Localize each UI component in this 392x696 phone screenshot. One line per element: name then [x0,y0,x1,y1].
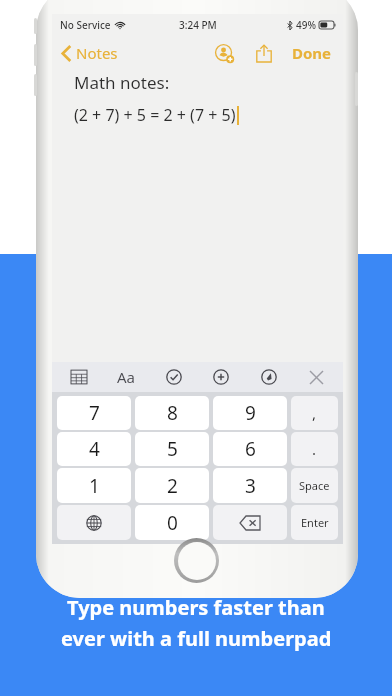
button[interactable]: , [291,396,338,430]
staticText: . [312,439,317,459]
button[interactable]: Draw [256,364,282,390]
button[interactable]: Home [174,538,219,583]
button[interactable]: Close keyboard [303,364,329,390]
button[interactable]: 1 [57,468,131,503]
button[interactable]: Switch keyboard [57,505,131,540]
staticText: 7 [89,400,100,426]
button[interactable]: 2 [135,468,209,503]
staticText: 49% [296,18,316,32]
button[interactable]: Enter [291,505,338,540]
staticText: 6 [245,436,256,462]
staticText: 1 [89,473,100,499]
button[interactable]: Aa [113,364,139,390]
staticText: Type numbers faster than [67,594,325,621]
staticText: Done [292,43,332,63]
button[interactable]: 6 [213,432,287,466]
staticText: 0 [167,510,178,536]
button[interactable]: Table [66,364,92,390]
staticText: 5 [167,436,178,462]
button[interactable]: Share [251,40,277,66]
button[interactable]: 0 [135,505,209,540]
staticText: 3 [245,473,256,499]
staticText: 9 [245,400,256,426]
button[interactable]: . [291,432,338,466]
staticText: 2 [167,473,178,499]
staticText: 3:24 PM [179,18,217,32]
staticText: Math notes: [74,71,170,94]
button[interactable]: 4 [57,432,131,466]
button[interactable]: 3 [213,468,287,503]
staticText: 4 [89,436,100,462]
staticText: Enter [301,515,329,530]
button[interactable]: Space [291,468,338,503]
button[interactable]: Notes [60,39,120,67]
button[interactable]: Done [289,39,335,67]
staticText: Aa [117,367,136,387]
button[interactable]: 7 [57,396,131,430]
staticText: Space [299,478,330,493]
button[interactable]: Backspace [213,505,287,540]
button[interactable]: Add People [211,40,237,66]
staticText: (2 + 7) + 5 = 2 + (7 + 5) [74,104,236,126]
button[interactable]: 9 [213,396,287,430]
button[interactable]: Add [208,364,234,390]
staticText: 8 [167,400,178,426]
staticText: Notes [76,43,118,63]
button[interactable]: Checklist [161,364,187,390]
staticText: , [312,403,317,423]
button[interactable]: 5 [135,432,209,466]
staticText: No Service [60,18,111,32]
staticText: ever with a full numberpad [61,625,332,652]
button[interactable]: 8 [135,396,209,430]
